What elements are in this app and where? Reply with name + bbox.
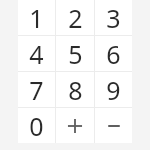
button[interactable]: 4 [18, 36, 55, 71]
button[interactable]: 3 [95, 0, 132, 35]
staticText: 8 [68, 73, 83, 107]
button[interactable]: Minus [95, 108, 132, 143]
staticText: 7 [29, 73, 44, 107]
staticText: 1 [29, 1, 44, 35]
staticText: 6 [106, 37, 121, 71]
staticText: 2 [68, 1, 83, 35]
staticText: 4 [29, 37, 44, 71]
staticText: 3 [106, 1, 121, 35]
button[interactable]: Plus [56, 108, 94, 143]
button[interactable]: 6 [95, 36, 132, 71]
button[interactable]: 5 [56, 36, 94, 71]
button[interactable]: 8 [56, 72, 94, 107]
button[interactable]: 1 [18, 0, 55, 35]
staticText: 0 [29, 109, 44, 143]
staticText: 5 [68, 37, 83, 71]
button[interactable]: 7 [18, 72, 55, 107]
button[interactable]: 2 [56, 0, 94, 35]
staticText: 9 [106, 73, 121, 107]
button[interactable]: 0 [18, 108, 55, 143]
button[interactable]: 9 [95, 72, 132, 107]
